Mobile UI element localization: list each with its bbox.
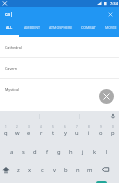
button[interactable]: m [84,159,96,178]
staticText: d [33,148,37,156]
staticText: MOVIE [105,25,117,30]
button[interactable]: ALL [0,20,19,37]
staticText: i [88,129,90,137]
staticText: n [76,166,80,174]
staticText: v [53,166,56,174]
button[interactable]: c [36,159,48,178]
staticText: x [28,166,32,174]
button[interactable]: 9 [95,121,107,140]
button[interactable]: x [24,159,36,178]
staticText: c [41,166,44,174]
button[interactable]: 4 [35,121,47,140]
staticText: p [111,129,115,137]
staticText: q [4,129,8,137]
button[interactable]: Mystical [0,79,119,99]
button[interactable]: j [77,140,89,159]
button[interactable]: 8 [83,121,95,140]
button[interactable]: g [53,140,65,159]
staticText: 8 [88,125,90,129]
staticText: l [106,148,108,156]
button[interactable]: n [72,159,84,178]
staticText: 5 [52,125,54,129]
button[interactable]: k [89,140,101,159]
staticText: e [27,129,31,137]
staticText: r [40,129,43,137]
button[interactable]: 5 [47,121,59,140]
button[interactable]: 1 [0,121,11,140]
staticText: j [82,148,84,156]
staticText: h [69,148,73,156]
staticText: Mystical [5,87,20,92]
button[interactable]: Cathedral [0,37,119,57]
staticText: m [87,166,93,174]
staticText: 4 [40,125,42,129]
button[interactable]: Close [99,89,114,104]
staticText: w [15,129,20,137]
button[interactable]: a [6,140,17,159]
button[interactable]: 3 [23,121,35,140]
button[interactable]: 7 [71,121,83,140]
staticText: 7 [76,125,78,129]
staticText: f [46,148,48,156]
staticText: 7:34 [110,1,118,6]
button[interactable]: ATMOSPHERE [46,20,75,37]
button[interactable]: 2 [11,121,23,140]
staticText: COMBAT [81,25,96,30]
button[interactable]: Backspace [96,159,114,178]
staticText: 6 [64,125,66,129]
button[interactable]: v [48,159,60,178]
staticText: 3 [28,125,30,129]
button[interactable]: Clear search [108,12,113,17]
button[interactable]: Voice input [110,113,116,119]
button[interactable]: Enter [83,178,119,183]
staticText: AMBIENT [24,25,41,30]
staticText: 2 [16,125,18,129]
button[interactable]: Shift [0,159,12,178]
staticText: 0 [112,125,114,129]
staticText: b [64,166,68,174]
staticText: 1 [5,125,7,129]
staticText: k [93,148,97,156]
staticText: t [52,129,55,137]
button[interactable]: l [101,140,113,159]
staticText: ALL [6,25,13,30]
button[interactable]: 0 [107,121,119,140]
staticText: 9 [100,125,102,129]
button[interactable]: d [29,140,41,159]
staticText: Cavern [5,66,18,71]
staticText: g [57,148,61,156]
staticText: u [75,129,79,137]
staticText: a [10,148,14,156]
button[interactable]: b [60,159,72,178]
staticText: Cathedral [5,45,22,50]
staticText: o [99,129,103,137]
button[interactable]: AMBIENT [19,20,46,37]
button[interactable]: 6 [59,121,71,140]
button[interactable]: h [65,140,77,159]
staticText: ATMOSPHERE [49,25,73,30]
button[interactable]: z [12,159,24,178]
button[interactable]: Cavern [0,58,119,78]
staticText: ca [5,11,11,18]
button[interactable]: COMBAT [75,20,102,37]
button[interactable]: s [17,140,29,159]
staticText: z [17,166,20,174]
button[interactable]: MOVIE [102,20,119,37]
staticText: s [22,148,25,156]
staticText: y [64,129,67,137]
button[interactable]: f [41,140,53,159]
